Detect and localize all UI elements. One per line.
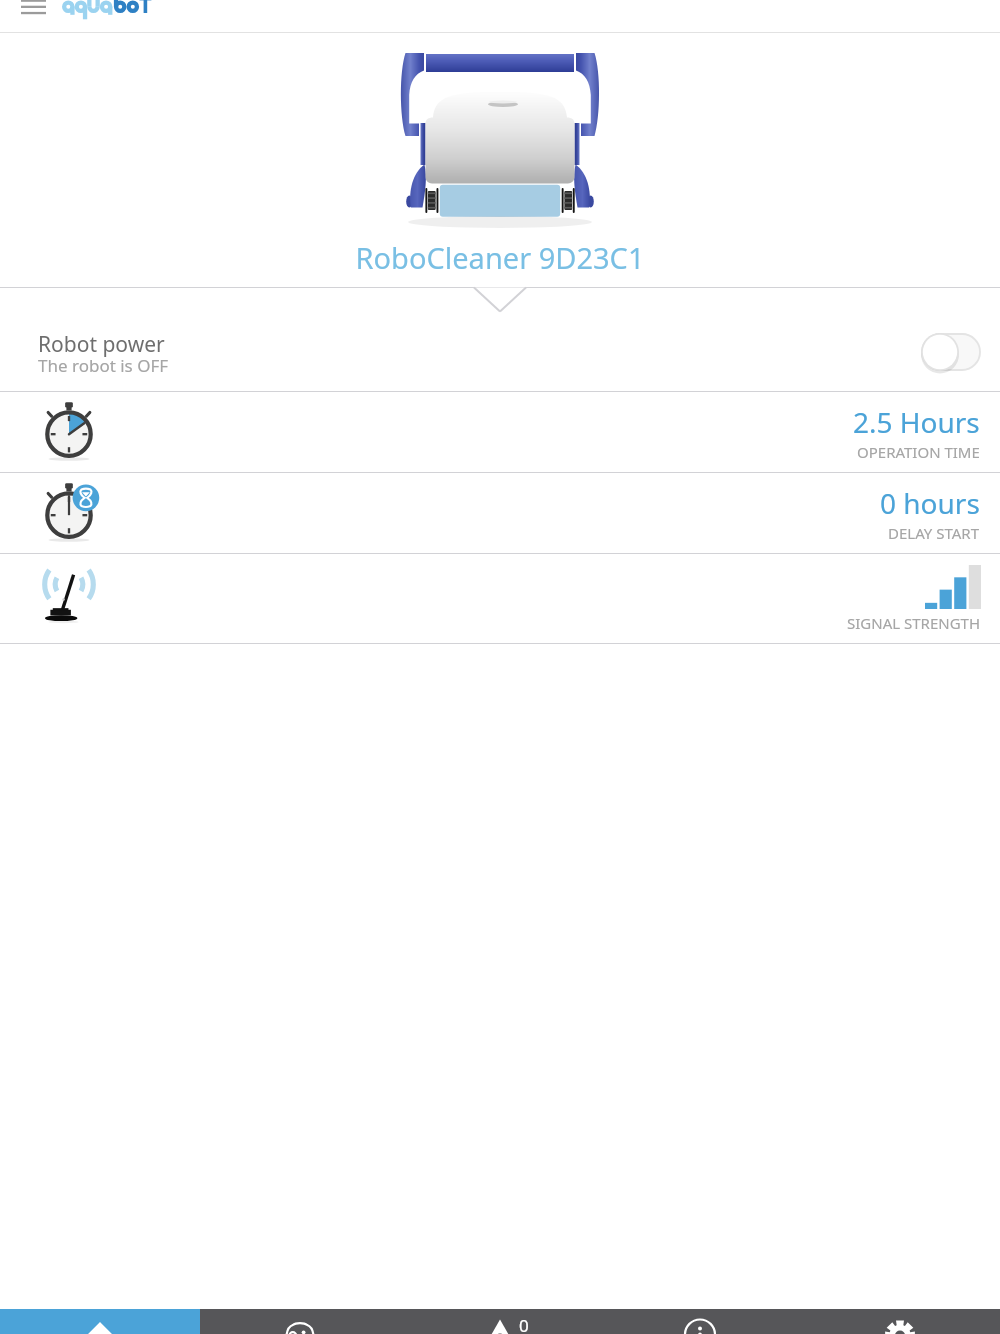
button[interactable]: 0 hours xyxy=(0,473,1000,553)
staticText: RoboCleaner 9D23C1 xyxy=(355,238,645,277)
button[interactable]: Alerts xyxy=(400,1309,600,1334)
staticText: SIGNAL STRENGTH xyxy=(847,613,981,633)
button[interactable]: SIGNAL STRENGTH xyxy=(0,554,1000,643)
staticText: 0 xyxy=(519,1314,529,1334)
button[interactable]: Home xyxy=(0,1309,200,1334)
staticText: 0 hours xyxy=(880,484,980,522)
button[interactable]: Settings xyxy=(800,1309,1000,1334)
staticText: OPERATION TIME xyxy=(857,442,980,462)
button[interactable]: Remote control xyxy=(200,1309,400,1334)
staticText: Robot power xyxy=(38,330,165,359)
button[interactable]: Robot power xyxy=(0,288,1000,391)
button[interactable]: Robot power toggle xyxy=(921,333,981,371)
button[interactable]: 2.5 Hours xyxy=(0,392,1000,472)
button[interactable]: Menu xyxy=(8,0,56,33)
staticText: The robot is OFF xyxy=(38,354,169,377)
staticText: DELAY START xyxy=(888,523,980,543)
staticText: 2.5 Hours xyxy=(853,403,980,441)
button[interactable]: Info xyxy=(600,1309,800,1334)
